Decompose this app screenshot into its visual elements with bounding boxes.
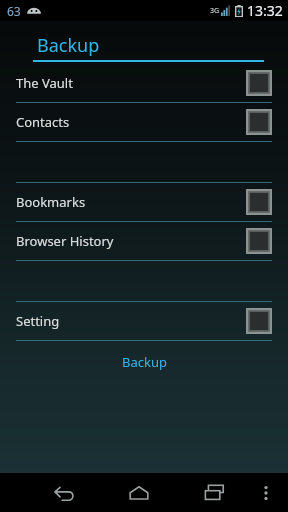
- button[interactable]: Bookmarks: [0, 183, 288, 221]
- button[interactable]: Browser History: [0, 222, 288, 260]
- staticText: Backup: [37, 33, 100, 58]
- button[interactable]: Backup: [0, 349, 288, 375]
- button[interactable]: Back: [42, 473, 86, 512]
- staticText: Contacts: [16, 113, 246, 131]
- button[interactable]: Recent apps: [192, 473, 236, 512]
- staticText: 63: [7, 3, 21, 19]
- button[interactable]: Contacts: [0, 103, 288, 141]
- button[interactable]: Home: [117, 473, 161, 512]
- staticText: 3G: [210, 6, 220, 16]
- staticText: Setting: [16, 312, 246, 330]
- button[interactable]: Setting: [0, 302, 288, 340]
- button[interactable]: More options: [250, 477, 282, 509]
- staticText: 13:32: [247, 1, 283, 20]
- staticText: Browser History: [16, 232, 246, 250]
- staticText: Bookmarks: [16, 193, 246, 211]
- staticText: Backup: [122, 353, 167, 371]
- staticText: The Vault: [16, 74, 246, 92]
- button[interactable]: The Vault: [0, 64, 288, 102]
